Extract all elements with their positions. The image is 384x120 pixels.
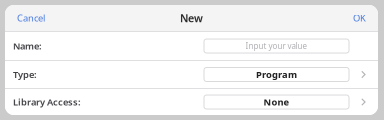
button[interactable]: Library Access: — [5, 89, 378, 115]
staticText: Input your value — [245, 41, 307, 51]
staticText: New — [180, 11, 203, 25]
staticText: Program — [256, 68, 297, 81]
button[interactable]: Cancel — [11, 7, 51, 29]
staticText: Type: — [13, 68, 37, 81]
staticText: None — [263, 96, 289, 108]
button[interactable]: Name: — [5, 32, 378, 60]
button[interactable]: OK — [347, 7, 372, 29]
staticText: OK — [353, 12, 366, 24]
button[interactable]: Type: — [5, 61, 378, 88]
staticText: Library Access: — [13, 96, 81, 108]
staticText: Cancel — [17, 12, 45, 24]
staticText: Name: — [13, 40, 42, 52]
